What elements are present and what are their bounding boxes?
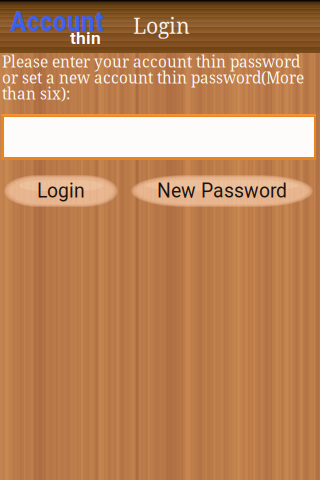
staticText: Account [10,5,104,38]
button[interactable]: New Password [131,175,313,207]
staticText: thin [70,28,101,48]
staticText: Login [37,180,85,202]
button[interactable]: Login [4,175,118,207]
staticText: New Password [157,180,287,202]
staticText: than six): [2,83,70,104]
staticText: or set a new account thin password(More [2,67,304,88]
staticText: Login [133,11,190,40]
staticText: Please enter your account thin password [2,51,300,72]
